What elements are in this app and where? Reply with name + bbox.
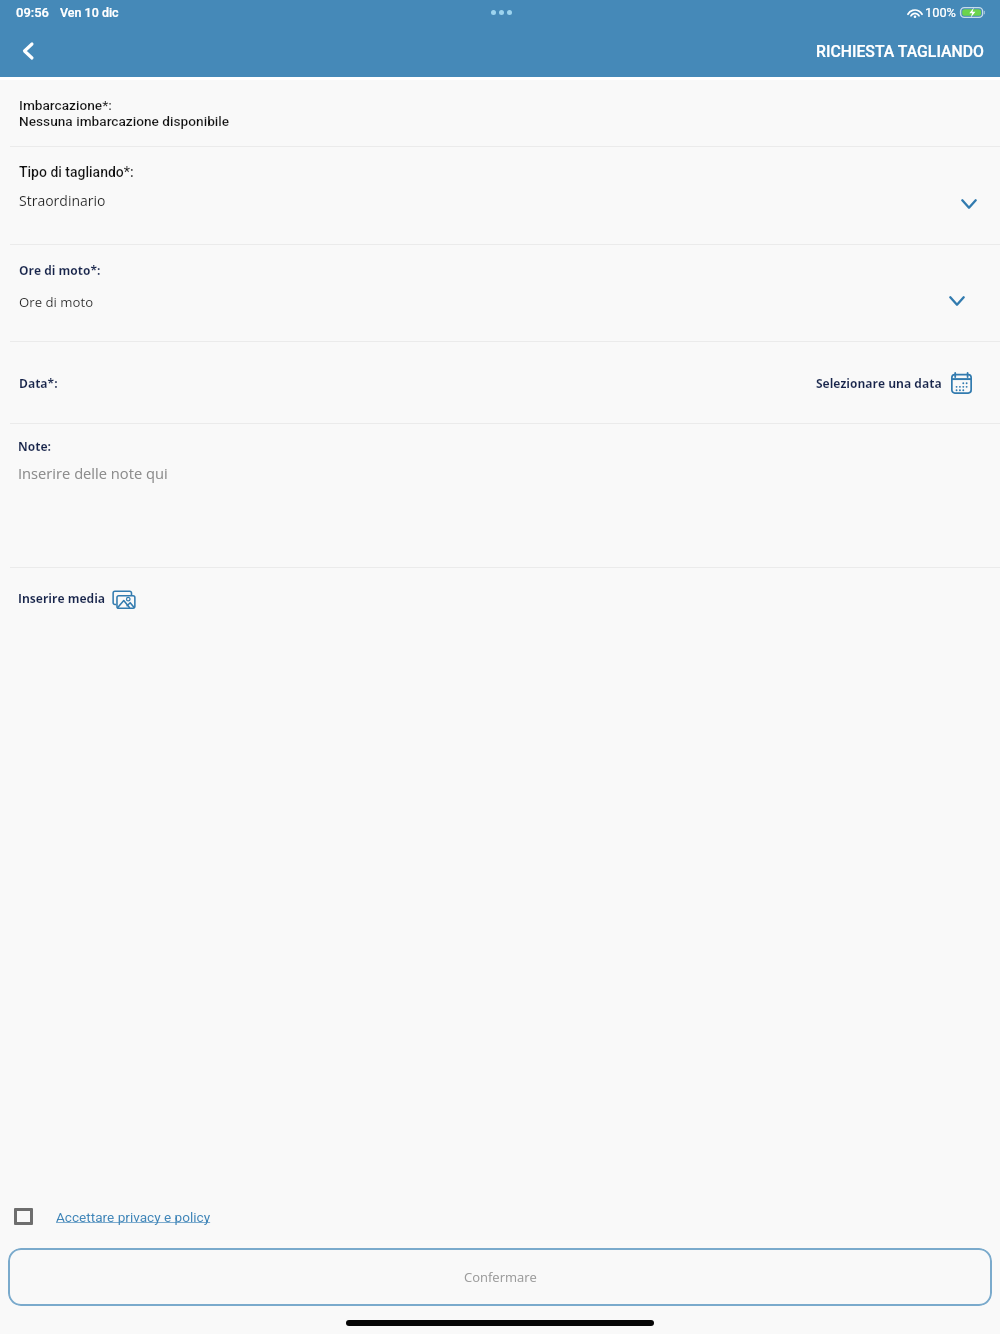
staticText: Inserire delle note qui <box>18 463 168 483</box>
button[interactable]: Selezionare una data <box>816 372 972 394</box>
staticText: Ore di moto*: <box>19 262 101 278</box>
staticText: Ven 10 dic <box>60 5 119 20</box>
staticText: Selezionare una data <box>816 375 942 391</box>
staticText: Ore di moto <box>19 293 94 311</box>
staticText: RICHIESTA TAGLIANDO <box>816 42 984 61</box>
staticText: Confermare <box>464 1268 537 1286</box>
button[interactable]: Inserire media <box>0 568 1000 627</box>
button[interactable]: Confermare <box>8 1248 992 1306</box>
staticText: Nessuna imbarcazione disponibile <box>19 113 230 129</box>
staticText: Note: <box>18 438 51 454</box>
button[interactable]: Tipo di tagliando*: <box>0 147 1000 244</box>
staticText: Imbarcazione*: <box>19 97 112 113</box>
staticText: Tipo di tagliando*: <box>19 164 134 180</box>
staticText: Inserire media <box>18 590 106 606</box>
button[interactable]: Back <box>6 29 50 73</box>
staticText: 100% <box>925 5 956 20</box>
staticText: 09:56 <box>16 5 49 20</box>
staticText: Data*: <box>19 375 58 391</box>
staticText: Straordinario <box>19 191 106 210</box>
button[interactable]: Accettare privacy e policy <box>0 1208 1000 1225</box>
staticText: Accettare privacy e policy <box>56 1209 211 1225</box>
button[interactable]: Ore di moto*: <box>0 245 1000 341</box>
